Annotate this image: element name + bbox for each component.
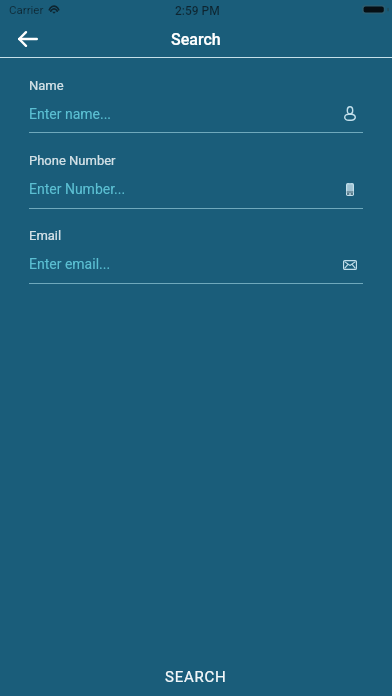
staticText: Email [29, 228, 62, 243]
staticText: Search [171, 30, 221, 49]
staticText: Enter email... [29, 256, 111, 272]
staticText: 2:59 PM [175, 4, 220, 18]
button[interactable]: Pick a contact [341, 103, 359, 123]
button[interactable]: Back [8, 24, 48, 54]
staticText: Name [29, 78, 64, 93]
staticText: Enter Number... [29, 181, 126, 197]
button[interactable]: Enter email... [29, 250, 333, 276]
staticText: Carrier [9, 3, 44, 16]
staticText: SEARCH [165, 668, 227, 686]
button[interactable]: Enter Number... [29, 175, 333, 201]
staticText: Phone Number [29, 153, 116, 168]
button[interactable]: Enter name... [29, 100, 333, 126]
button[interactable]: Pick an email address [341, 255, 359, 275]
button[interactable]: SEARCH [0, 658, 392, 696]
button[interactable]: Pick a phone number [341, 179, 359, 199]
staticText: Enter name... [29, 106, 112, 122]
